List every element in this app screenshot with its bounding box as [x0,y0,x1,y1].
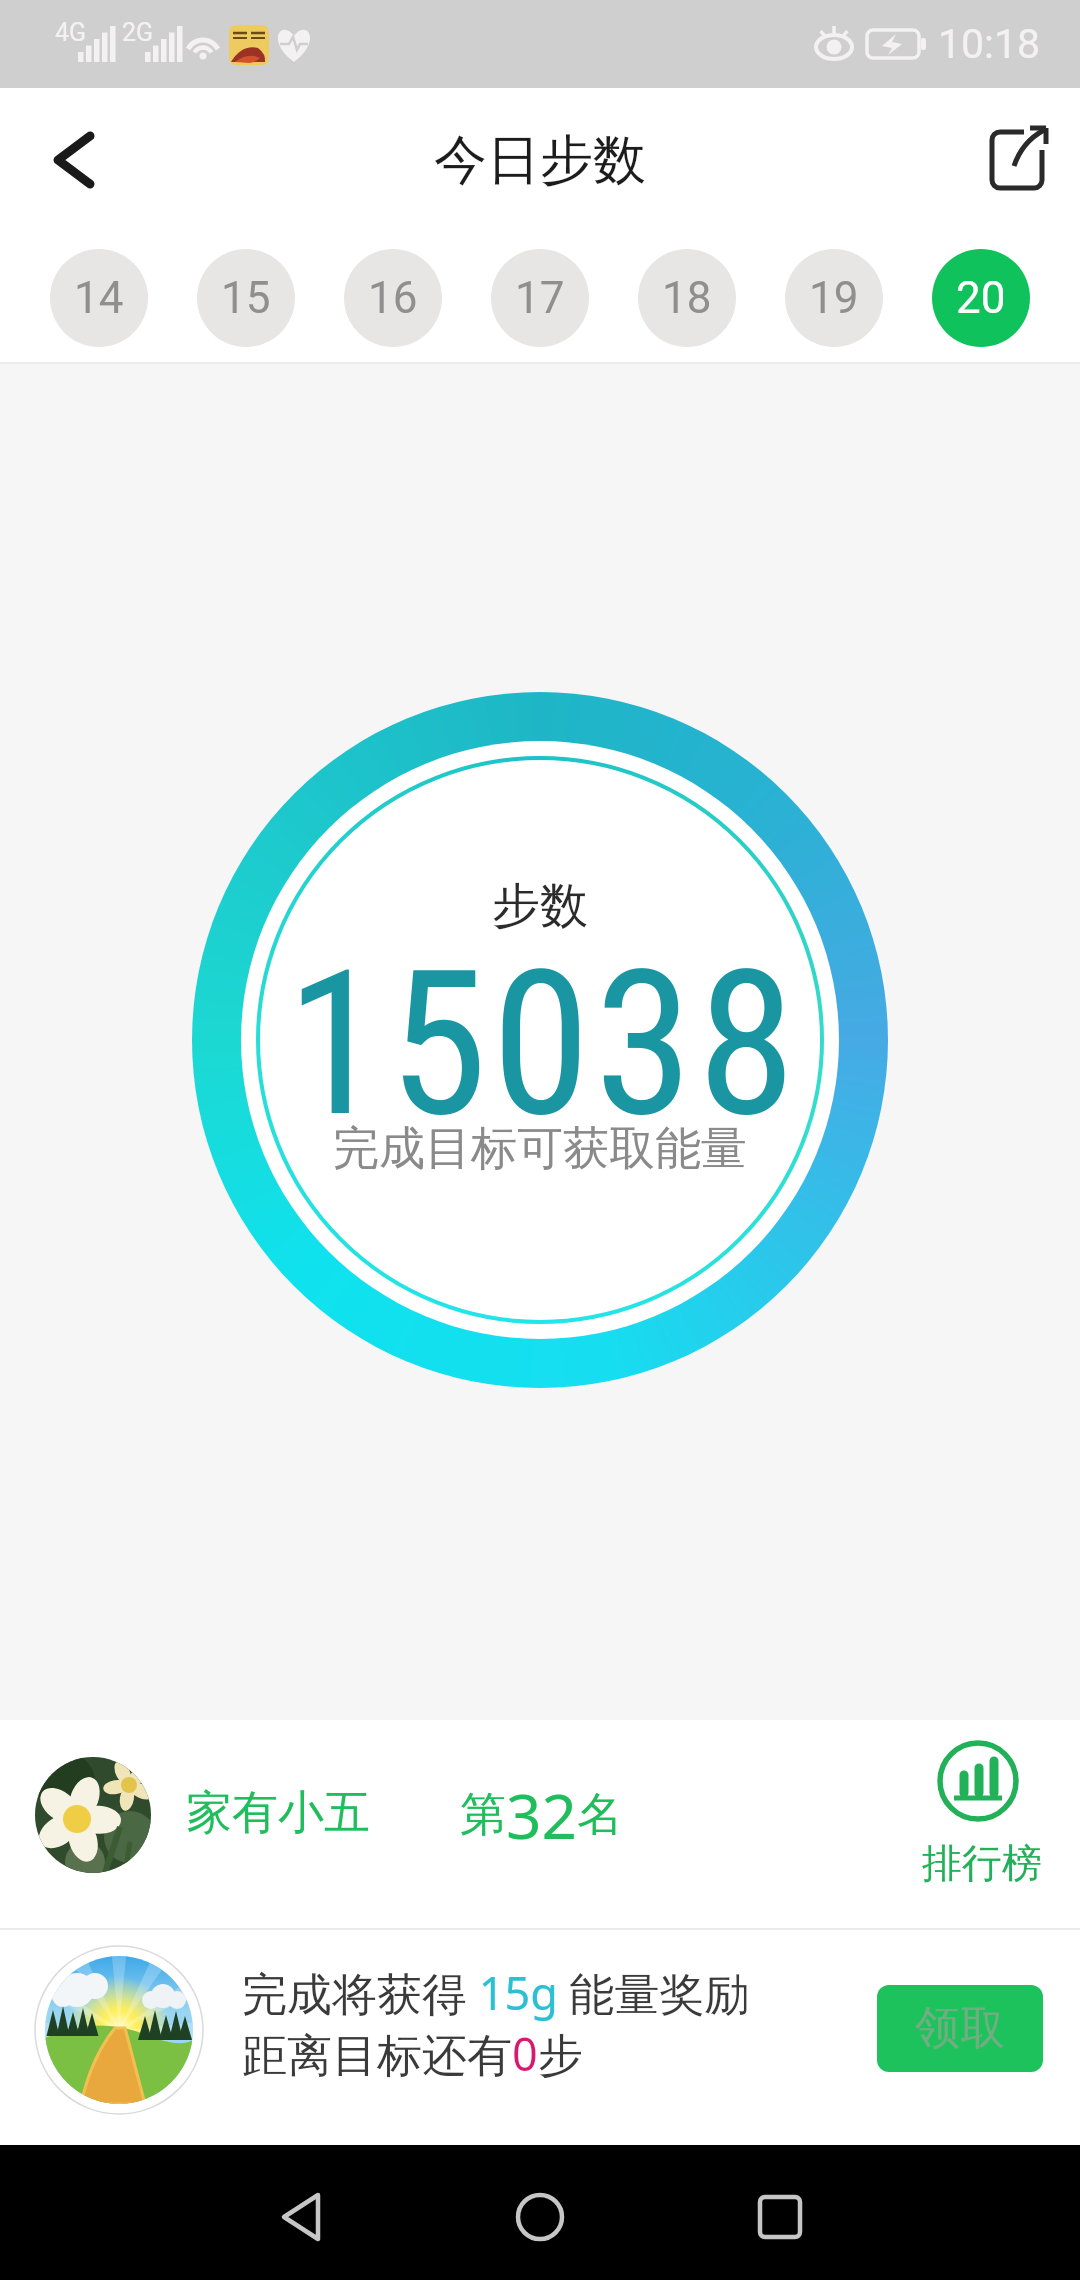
button[interactable]: 领取 [877,1985,1043,2072]
button[interactable]: 家有小五 [0,1720,1080,1928]
staticText: 今日步数 [434,127,646,194]
button[interactable]: 16 [344,249,442,347]
button[interactable]: 15 [197,249,295,347]
staticText: 距离目标还有0步 [242,2023,583,2084]
staticText: 14 [74,272,124,324]
staticText: 10:18 [938,20,1041,68]
staticText: 20 [956,272,1006,324]
staticText: 2G [122,18,154,47]
button[interactable] [960,88,1080,232]
button[interactable]: 20 [932,249,1030,347]
button[interactable] [0,88,140,232]
button[interactable]: 排行榜 [900,1720,1080,1928]
staticText: 32 [506,1773,577,1857]
staticText: 第 [460,1786,506,1844]
staticText: 名 [577,1786,623,1844]
button[interactable] [720,2157,840,2267]
staticText: 18 [662,272,712,324]
button[interactable]: 17 [491,249,589,347]
staticText: 4G [55,18,87,47]
staticText: 领取 [915,2000,1005,2057]
button[interactable]: 14 [50,249,148,347]
staticText: 15038 [286,927,800,1161]
staticText: 完成目标可获取能量 [333,1120,747,1178]
staticText: 排行榜 [922,1838,1042,1888]
staticText: 19 [809,272,859,324]
button[interactable]: 19 [785,249,883,347]
staticText: 步数 [492,876,588,936]
staticText: 15 [221,272,271,324]
button[interactable] [240,2157,360,2267]
staticText: 完成将获得 15g 能量奖励 [242,1962,750,2023]
staticText: 17 [515,272,565,324]
button[interactable] [480,2157,600,2267]
staticText: 16 [368,272,418,324]
button[interactable]: 18 [638,249,736,347]
staticText: 家有小五 [186,1784,370,1842]
